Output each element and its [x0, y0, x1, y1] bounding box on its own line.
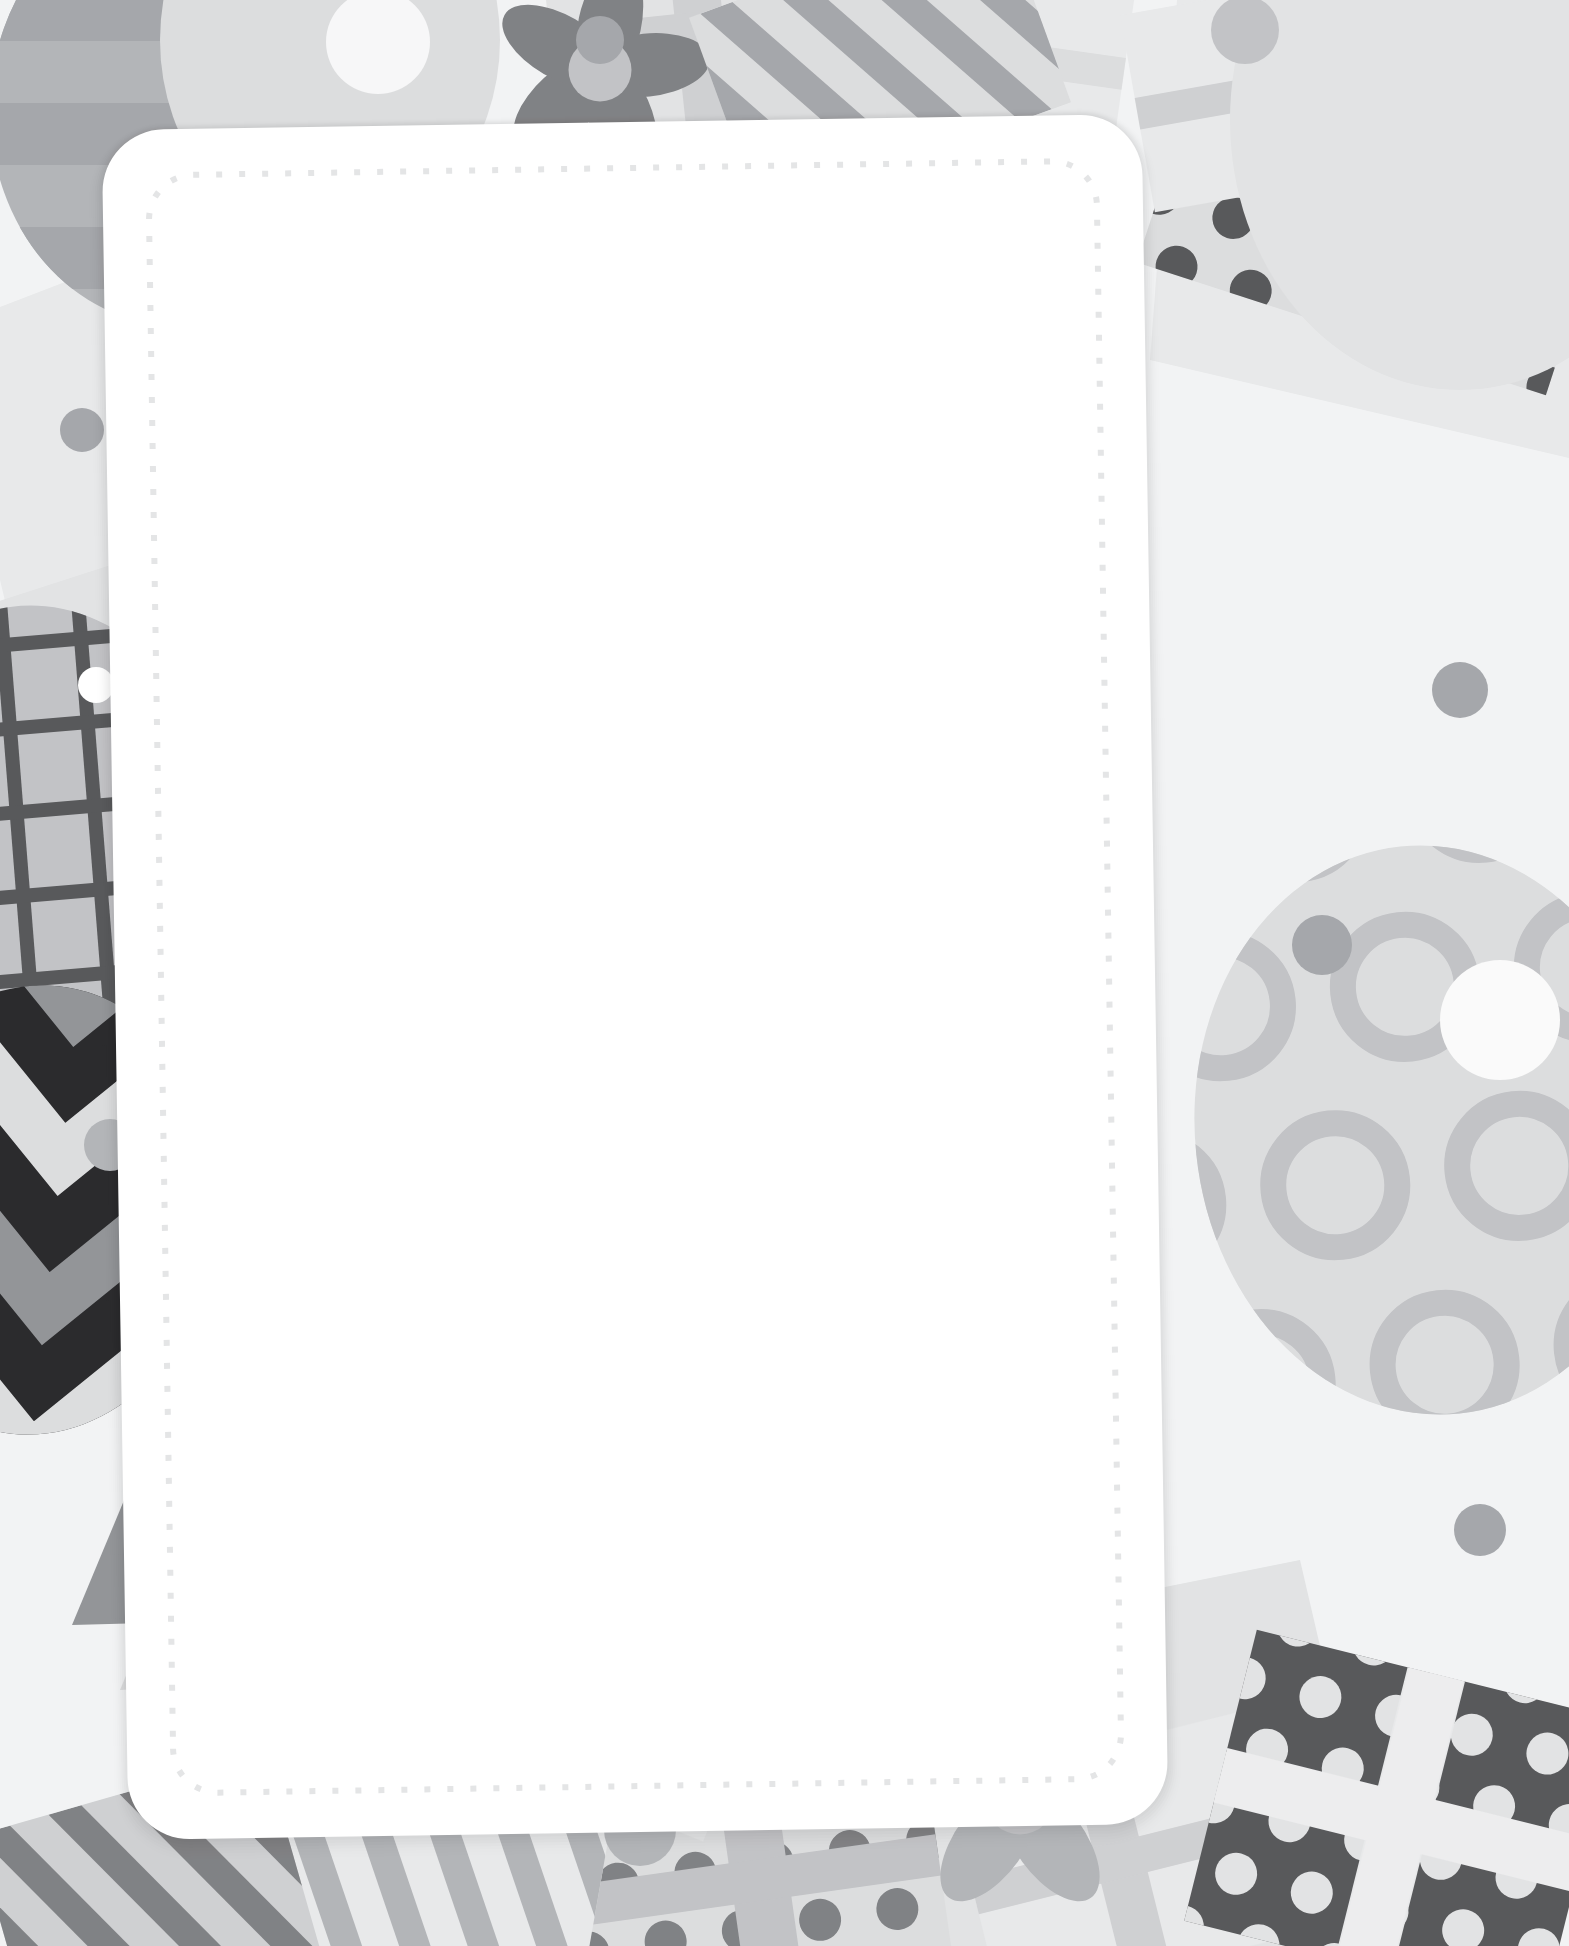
button[interactable]: Greeting card canvas: [0, 0, 1569, 1946]
